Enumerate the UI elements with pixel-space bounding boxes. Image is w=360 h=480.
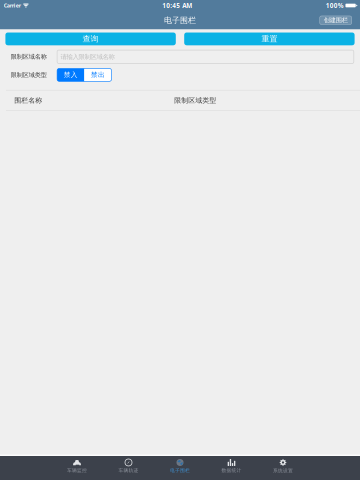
staticText: 限制区域类型	[174, 96, 216, 105]
staticText: 10:45 AM	[162, 1, 192, 10]
staticText: 请输入限制区域名称	[60, 53, 114, 61]
staticText: 重置	[261, 34, 277, 44]
button[interactable]: 创建围栏	[320, 16, 352, 24]
button[interactable]: 禁出	[84, 68, 111, 81]
button[interactable]: 查询	[5, 32, 176, 45]
staticText: 限制区域名称	[11, 53, 47, 61]
button[interactable]: 数据统计	[206, 456, 257, 480]
button[interactable]: 禁入	[57, 68, 84, 81]
staticText: 创建围栏	[324, 16, 348, 24]
staticText: 车辆监控	[67, 467, 87, 473]
staticText: 禁出	[91, 71, 105, 79]
staticText: 查询	[83, 34, 99, 44]
staticText: 围栏名称	[14, 96, 42, 105]
staticText: 禁入	[64, 71, 78, 79]
staticText: 车辆轨迹	[118, 467, 138, 473]
staticText: Carrier	[4, 2, 21, 9]
button[interactable]: 重置	[184, 32, 355, 45]
staticText: 系统设置	[273, 468, 293, 474]
staticText: 数据统计	[221, 467, 241, 473]
staticText: 限制区域类型	[11, 71, 47, 79]
button[interactable]: 电子围栏	[154, 456, 206, 480]
button[interactable]: 车辆轨迹	[103, 456, 154, 480]
button[interactable]: 车辆监控	[51, 456, 103, 480]
staticText: 电子围栏	[164, 15, 196, 25]
staticText: 电子围栏	[170, 467, 190, 473]
staticText: 100%	[326, 1, 344, 10]
button[interactable]: 系统设置	[257, 456, 309, 480]
